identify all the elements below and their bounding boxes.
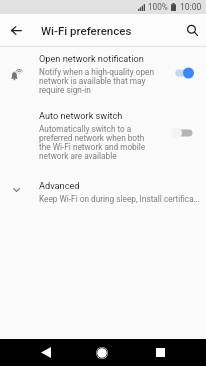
button[interactable]: Search <box>178 14 206 47</box>
staticText: 10:00 <box>180 2 202 12</box>
staticText: Notify when a high-quality open network … <box>39 67 155 95</box>
button[interactable]: Back <box>28 339 64 366</box>
button[interactable]: Auto network switch <box>0 104 206 168</box>
button[interactable]: Open network notification <box>0 47 206 104</box>
staticText: Automatically switch to a preferred netw… <box>39 124 146 161</box>
button[interactable]: Recent apps <box>142 339 178 366</box>
staticText: 100% <box>148 2 168 12</box>
staticText: Wi-Fi preferences <box>41 24 132 37</box>
button[interactable]: Switch on <box>171 67 194 79</box>
staticText: Keep Wi-Fi on during sleep, Install cert… <box>39 194 200 204</box>
button[interactable]: Back <box>0 14 33 47</box>
button[interactable]: Home <box>84 339 120 366</box>
staticText: Advanced <box>39 180 80 191</box>
button[interactable]: Advanced <box>0 168 206 211</box>
button[interactable]: Switch off <box>171 127 194 139</box>
staticText: Auto network switch <box>39 110 123 121</box>
staticText: Open network notification <box>39 53 144 64</box>
